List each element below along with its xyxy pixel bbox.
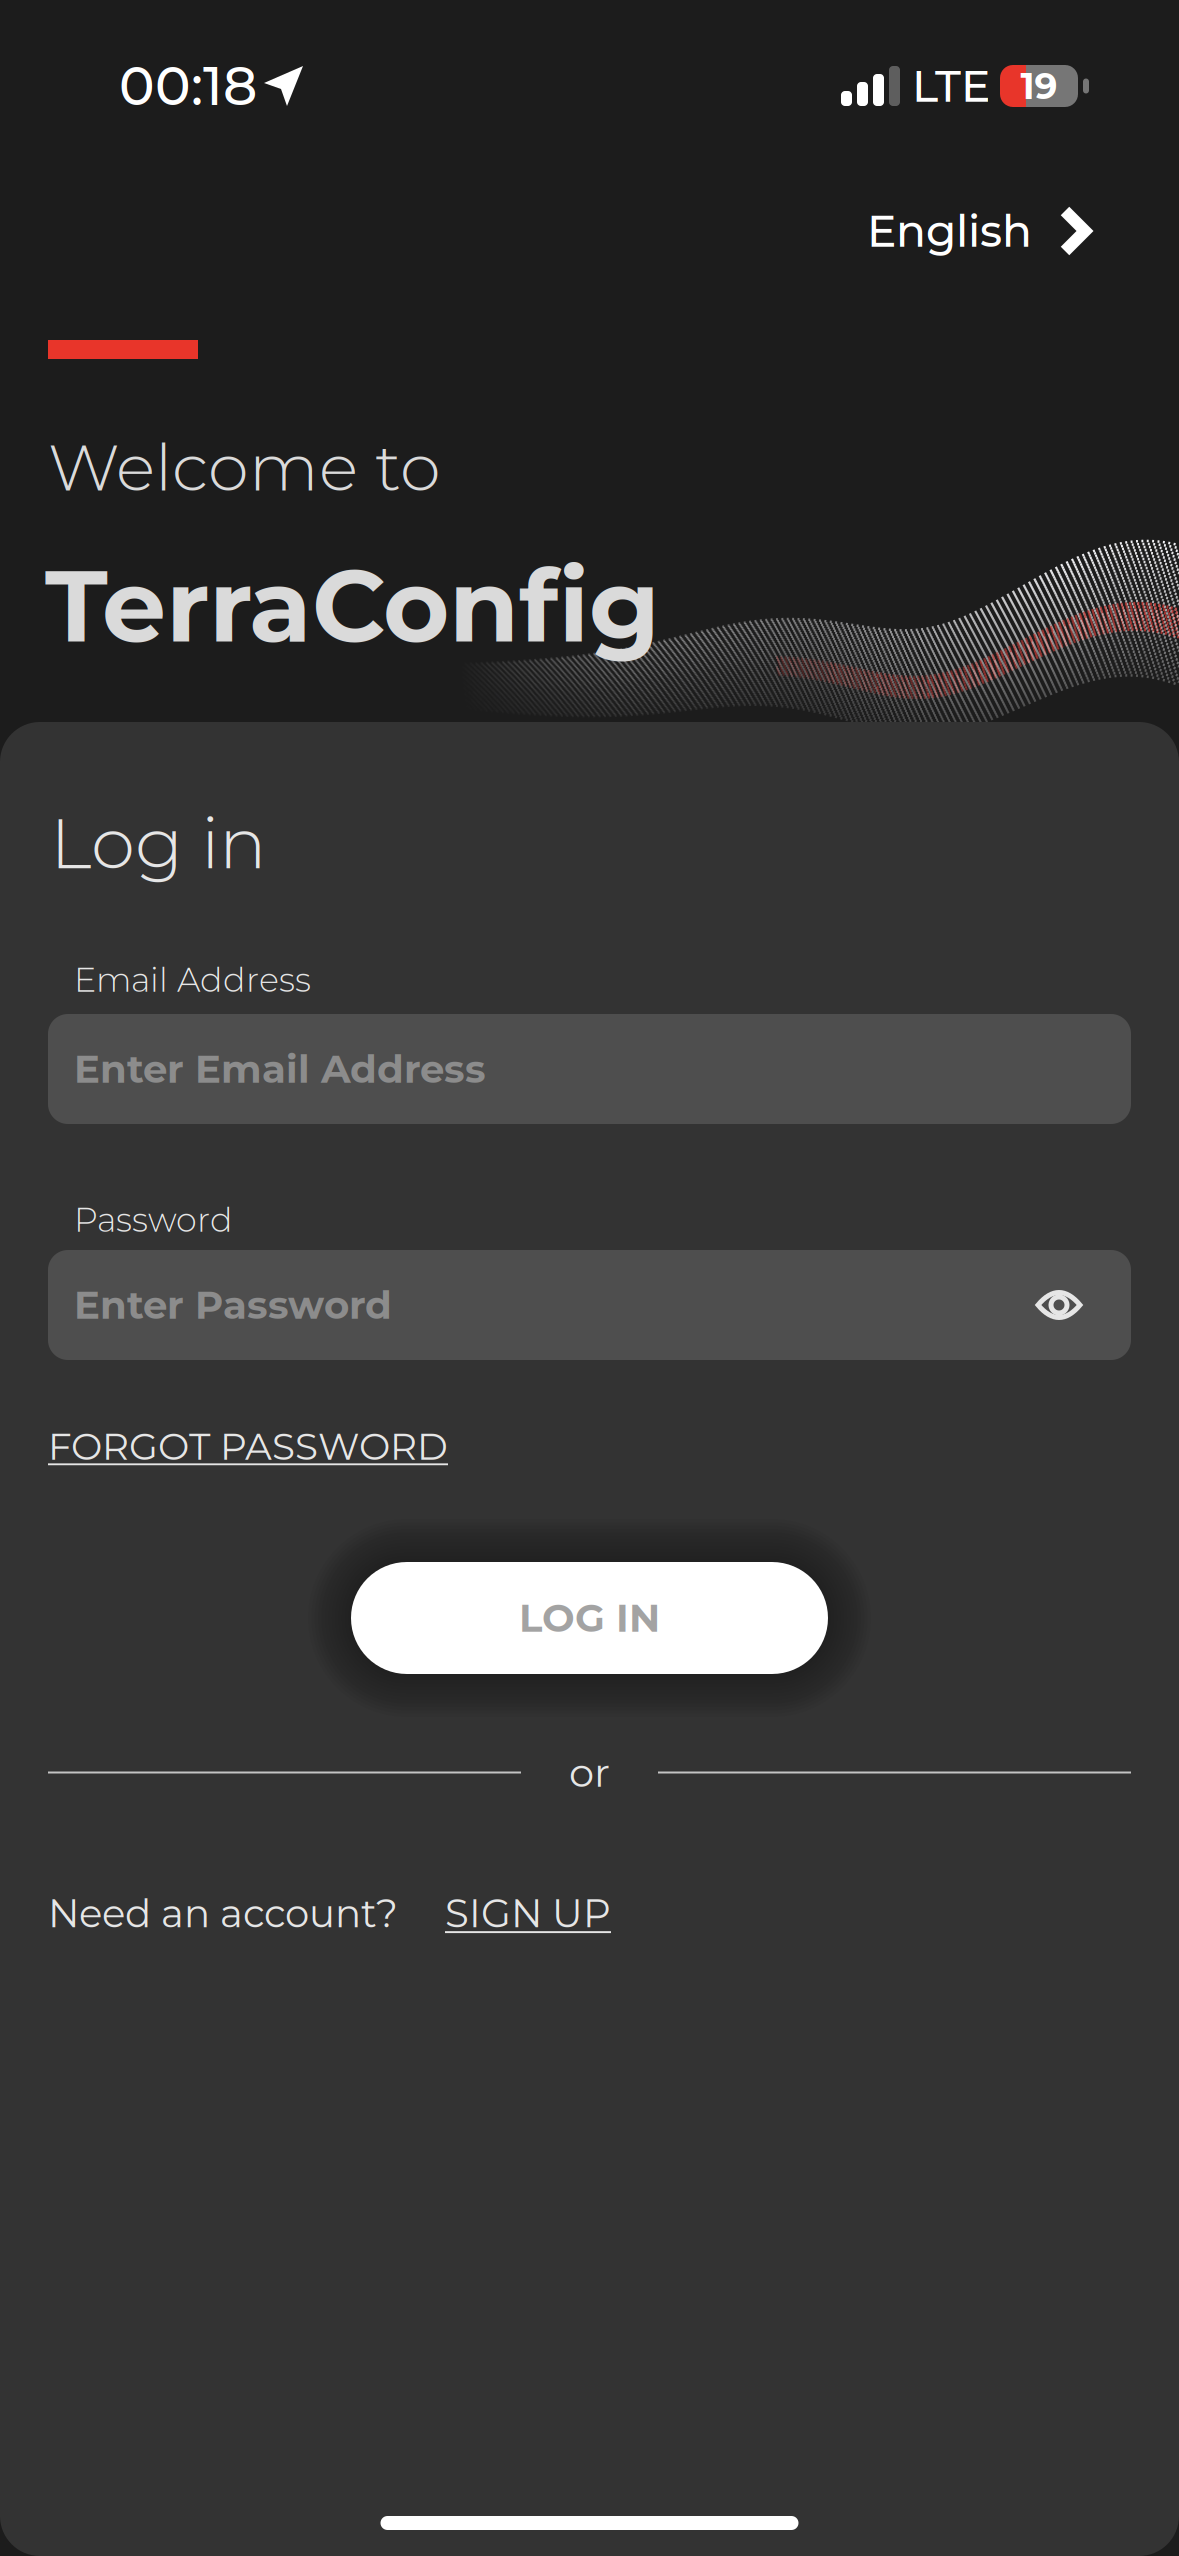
staticText: Email Address — [74, 959, 311, 1000]
staticText: LOG IN — [519, 1594, 660, 1641]
staticText: 19 — [1020, 64, 1057, 108]
button[interactable]: Show password — [1028, 1264, 1090, 1346]
staticText: LTE — [912, 59, 990, 113]
staticText: Need an account? — [48, 1890, 398, 1937]
button[interactable]: FORGOT PASSWORD — [0, 1417, 448, 1475]
staticText: Enter Email Address — [74, 1045, 486, 1092]
staticText: Welcome to — [48, 427, 441, 507]
staticText: Log in — [50, 800, 267, 886]
button[interactable]: English — [867, 172, 1179, 290]
staticText: Enter Password — [74, 1281, 392, 1328]
staticText: or — [569, 1748, 610, 1797]
staticText: 00:18 — [119, 53, 257, 118]
staticText: FORGOT PASSWORD — [48, 1423, 448, 1469]
staticText: English — [867, 204, 1032, 258]
button[interactable]: LOG IN — [351, 1562, 828, 1674]
staticText: TerraConfig — [45, 543, 660, 667]
button[interactable]: SIGN UP — [445, 1890, 611, 1937]
staticText: SIGN UP — [445, 1890, 611, 1937]
staticText: Password — [74, 1199, 233, 1240]
